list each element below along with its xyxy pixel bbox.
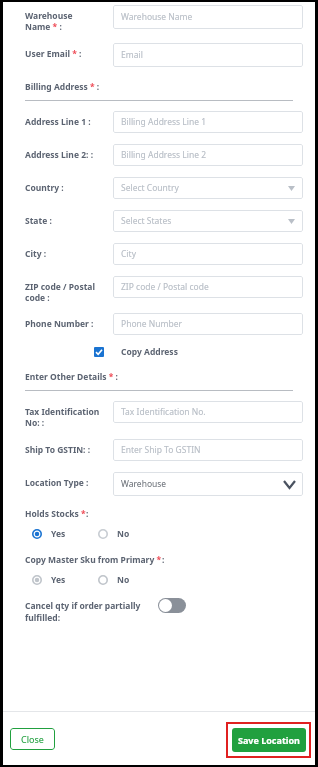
staticText: Save Location (238, 734, 300, 746)
staticText: Email (121, 49, 143, 61)
staticText: Phone Number : (25, 318, 94, 330)
button[interactable]: Copy Address (94, 346, 178, 358)
button[interactable]: City (113, 243, 303, 265)
staticText: Address Line 2: : (25, 149, 94, 161)
staticText: Billing Address Line 2 (121, 149, 207, 161)
staticText: Enter Other Details * : (25, 371, 118, 383)
button[interactable]: ZIP code / Postal code (113, 276, 303, 298)
staticText: Billing Address * : (25, 81, 100, 93)
staticText: Phone Number (121, 318, 182, 330)
button[interactable]: Phone Number (113, 313, 303, 335)
staticText: Select Country (121, 182, 179, 194)
staticText: ZIP code / Postal code : (25, 281, 95, 303)
button[interactable]: Cancel qty toggle (158, 598, 186, 613)
staticText: City : (25, 248, 47, 260)
staticText: Copy Master Sku from Primary * (25, 554, 162, 566)
button[interactable]: Select States (113, 210, 303, 232)
staticText: Enter Ship To GSTIN (121, 444, 201, 456)
button[interactable]: Billing Address Line 2 (113, 144, 303, 166)
staticText: Ship To GSTIN: : (25, 444, 91, 456)
staticText: Warehouse (121, 478, 167, 490)
button[interactable]: Email (113, 43, 303, 67)
button[interactable]: Close (10, 728, 55, 750)
staticText: Select States (121, 215, 172, 227)
staticText: No (117, 574, 130, 586)
button[interactable]: Save Location (232, 728, 306, 752)
button[interactable]: Billing Address Line 1 (113, 111, 303, 133)
staticText: Address Line 1 : (25, 116, 91, 128)
button[interactable]: Yes (32, 574, 66, 586)
staticText: : (86, 508, 89, 520)
button[interactable]: No (98, 574, 130, 586)
button[interactable]: Warehouse (113, 472, 303, 496)
button[interactable]: Select Country (113, 177, 303, 199)
button[interactable]: Warehouse Name (113, 5, 303, 29)
staticText: Warehouse Name (121, 11, 193, 23)
staticText: State : (25, 215, 52, 227)
staticText: Close (21, 733, 44, 745)
staticText: Yes (51, 574, 66, 586)
staticText: Country : (25, 182, 64, 194)
button[interactable]: Tax Identification No. (113, 401, 303, 423)
staticText: Location Type : (25, 477, 89, 489)
staticText: Billing Address Line 1 (121, 116, 207, 128)
button[interactable]: No (98, 528, 130, 540)
staticText: No (117, 528, 130, 540)
staticText: City (121, 248, 136, 260)
button[interactable]: Yes (32, 528, 66, 540)
staticText: User Email * : (25, 48, 82, 60)
staticText: Cancel qty if order partially fulfilled: (25, 600, 141, 624)
staticText: Copy Address (121, 346, 178, 358)
button[interactable]: Enter Ship To GSTIN (113, 439, 303, 461)
staticText: Tax Identification No. (121, 406, 206, 418)
staticText: Holds Stocks * (25, 508, 86, 520)
staticText: Warehouse Name * : (25, 10, 73, 32)
staticText: Yes (51, 528, 66, 540)
staticText: : (162, 554, 165, 566)
staticText: ZIP code / Postal code (121, 281, 209, 293)
staticText: Tax Identification No: : (25, 406, 100, 428)
